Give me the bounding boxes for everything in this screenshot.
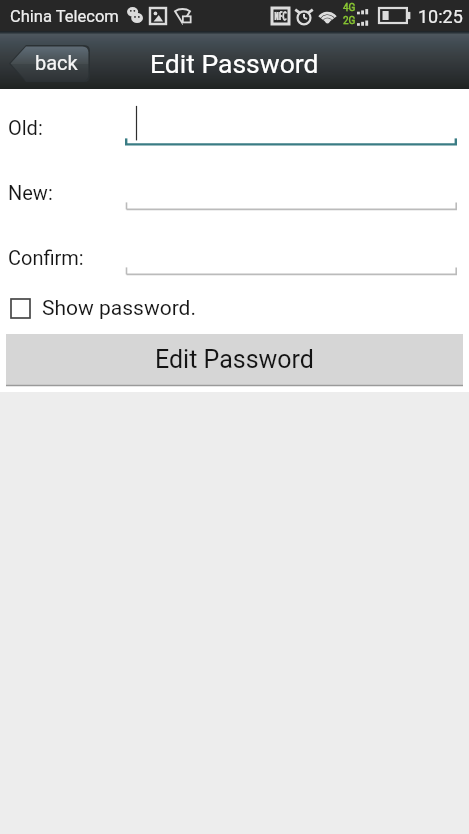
- staticText: China Telecom: [10, 7, 119, 26]
- button[interactable]: Confirm password field: [125, 237, 457, 277]
- button[interactable]: Show password.: [0, 291, 469, 325]
- staticText: Old:: [8, 116, 43, 139]
- staticText: Edit Password: [155, 345, 314, 374]
- staticText: Confirm:: [8, 246, 84, 269]
- staticText: back: [35, 51, 78, 74]
- staticText: 10:25: [418, 6, 463, 27]
- staticText: Edit Password: [150, 48, 319, 79]
- staticText: Show password.: [42, 296, 196, 321]
- button[interactable]: New password field: [125, 172, 457, 212]
- button[interactable]: Back: [9, 45, 90, 82]
- button[interactable]: Old password field: [125, 107, 457, 147]
- staticText: New:: [8, 181, 53, 204]
- staticText: 4G: [343, 2, 356, 14]
- staticText: 2G: [343, 15, 356, 27]
- button[interactable]: Edit Password: [6, 334, 463, 385]
